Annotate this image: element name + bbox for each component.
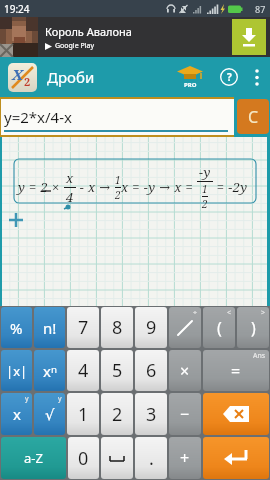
staticText: 1 <box>115 173 121 187</box>
button[interactable]: Король Авалона <box>0 17 270 57</box>
staticText: xⁿ <box>43 361 57 381</box>
button[interactable]: 4 <box>67 350 99 391</box>
staticText: 6 <box>146 358 157 383</box>
button[interactable]: + <box>169 437 201 479</box>
staticText: ( <box>217 317 222 339</box>
staticText: |x| <box>6 362 28 380</box>
button[interactable]: 5 <box>101 350 133 391</box>
staticText: Дроби <box>47 67 95 87</box>
staticText: ? <box>227 70 232 84</box>
button[interactable]: × <box>169 350 201 391</box>
button[interactable]: ) <box>237 307 269 348</box>
button[interactable]: 1 <box>67 393 99 435</box>
button[interactable]: PRO <box>175 66 205 89</box>
staticText: 9 <box>146 315 157 340</box>
staticText: = −2y <box>213 178 248 196</box>
staticText: ÷ <box>193 308 198 318</box>
staticText: 87 <box>255 3 266 15</box>
staticText: 5 <box>112 358 123 383</box>
staticText: 4 <box>66 188 74 206</box>
staticText: 19:24 <box>4 2 30 16</box>
staticText: x <box>66 169 74 187</box>
staticText: − x → <box>76 178 115 196</box>
staticText: > <box>261 308 266 318</box>
staticText: PRO <box>184 81 197 89</box>
button[interactable]: |x| <box>1 350 32 391</box>
staticText: ) <box>251 317 256 339</box>
staticText: y <box>58 394 62 404</box>
button[interactable]: 2 <box>101 393 133 435</box>
button[interactable]: . <box>135 437 167 479</box>
staticText: 7 <box>78 315 89 340</box>
staticText: Google Play <box>55 41 94 51</box>
staticText: % <box>10 318 23 338</box>
button[interactable] <box>232 19 266 55</box>
staticText: y=2*x/4-x <box>4 107 72 127</box>
button[interactable]: 6 <box>135 350 167 391</box>
staticText: < <box>227 308 232 318</box>
staticText: . <box>149 446 154 471</box>
staticText: x = −y → x = <box>121 178 197 196</box>
button[interactable] <box>203 393 269 435</box>
staticText: 1 <box>78 402 89 427</box>
staticText: 4 <box>78 358 89 383</box>
staticText: Король Авалона <box>45 24 132 39</box>
button[interactable]: 3 <box>135 393 167 435</box>
button[interactable]: 7 <box>67 307 99 348</box>
button[interactable]: n! <box>34 307 65 348</box>
staticText: Ans <box>253 351 266 361</box>
staticText: 3 <box>146 402 157 427</box>
button[interactable]: 9 <box>135 307 167 348</box>
button[interactable]: x <box>1 393 32 435</box>
button[interactable]: % <box>1 307 32 348</box>
button[interactable]: a-Z <box>1 437 66 479</box>
staticText: x <box>13 404 21 424</box>
staticText: − <box>180 403 190 425</box>
button[interactable]: − <box>169 393 201 435</box>
staticText: + <box>180 447 190 469</box>
button[interactable] <box>203 437 269 479</box>
button[interactable]: ? <box>219 67 239 87</box>
button[interactable]: = <box>203 350 269 391</box>
staticText: X <box>12 64 23 84</box>
staticText: 8 <box>112 315 123 340</box>
staticText: 2 <box>24 74 31 89</box>
button[interactable]: 8 <box>101 307 133 348</box>
staticText: 0 <box>78 446 89 471</box>
staticText: y = 2 × <box>18 178 64 196</box>
staticText: C <box>248 106 259 128</box>
button[interactable]: √ <box>34 393 65 435</box>
button[interactable] <box>255 69 259 86</box>
button[interactable]: ÷ <box>169 307 201 348</box>
staticText: = <box>231 360 241 382</box>
staticText: √ <box>45 406 55 423</box>
staticText: 1 <box>202 182 208 196</box>
button[interactable]: ( <box>203 307 235 348</box>
button[interactable]: C <box>237 99 269 134</box>
staticText: × <box>180 360 190 382</box>
staticText: 2 <box>112 402 123 427</box>
staticText: n! <box>43 318 57 338</box>
staticText: −y <box>199 163 211 181</box>
button[interactable]: 0 <box>68 437 99 479</box>
staticText: 2 <box>115 188 121 202</box>
staticText: a-Z <box>24 449 43 467</box>
button[interactable] <box>101 437 133 479</box>
staticText: y <box>25 394 29 404</box>
button[interactable]: xⁿ <box>34 350 65 391</box>
staticText: 2 <box>202 197 208 211</box>
